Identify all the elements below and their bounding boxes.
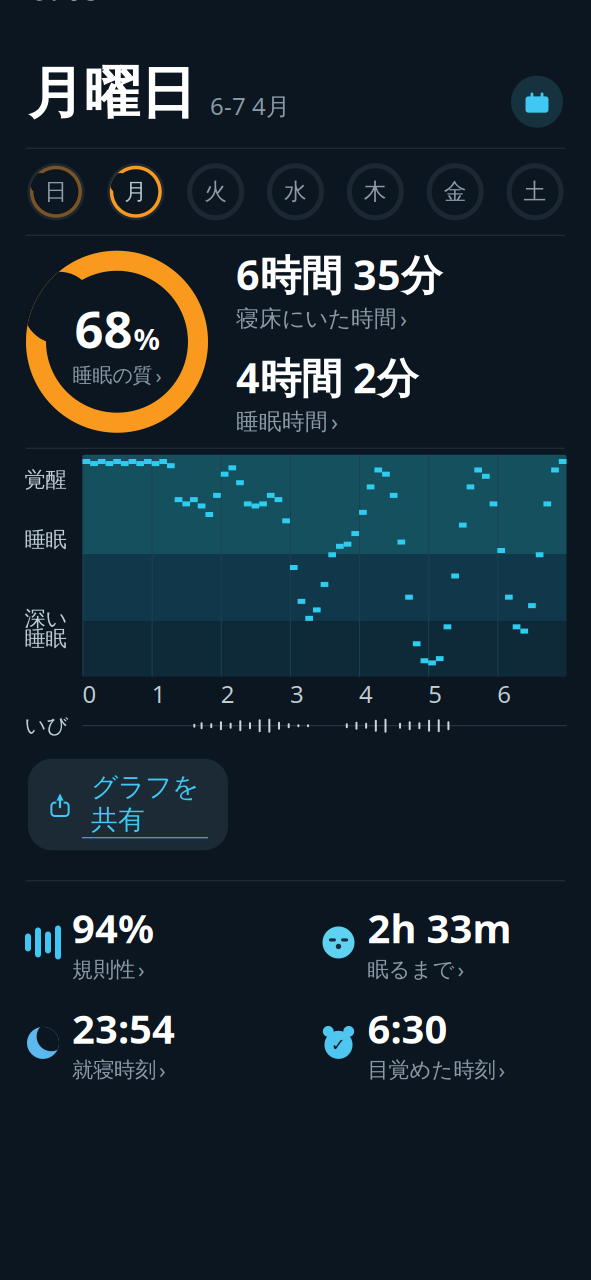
staticText: ›	[155, 362, 161, 389]
staticText: 6	[497, 678, 511, 710]
button[interactable]: 水	[256, 161, 335, 223]
button[interactable]: 23:54	[0, 1002, 295, 1084]
button[interactable]: 金	[415, 161, 495, 223]
staticText: 3	[290, 678, 304, 710]
button[interactable]: 94%	[0, 901, 295, 984]
button[interactable]: 日	[16, 161, 96, 223]
staticText: 1	[152, 678, 166, 710]
staticText: ›	[498, 1056, 505, 1084]
staticText: ›	[400, 304, 407, 334]
staticText: 木	[364, 178, 387, 206]
staticText: 4時間 2分	[236, 350, 418, 405]
staticText: 就寝時刻	[72, 1057, 156, 1083]
staticText: 火	[204, 178, 227, 206]
staticText: ›	[159, 1056, 166, 1084]
staticText: 月曜日	[28, 59, 196, 128]
button[interactable]: ▲	[28, 759, 228, 850]
staticText: 0	[82, 678, 96, 710]
button[interactable]: 68	[22, 247, 212, 437]
staticText: 2h 33m	[367, 901, 511, 954]
staticText: 規則性	[72, 956, 135, 983]
button[interactable]: ✓	[295, 1002, 591, 1084]
button[interactable]: 木	[335, 161, 415, 223]
staticText: 6-7 4月	[210, 90, 290, 122]
button[interactable]: カレンダー	[511, 76, 563, 128]
staticText: 4	[359, 678, 373, 710]
staticText: 睡眠	[24, 626, 66, 652]
staticText: 眠るまで	[367, 956, 454, 983]
staticText: ›	[138, 955, 145, 984]
staticText: 目覚めた時刻	[367, 1057, 495, 1083]
staticText: グラフを共有	[91, 771, 199, 836]
staticText: 5	[428, 678, 442, 710]
button[interactable]: 火	[176, 161, 256, 223]
button[interactable]: 6時間 35分	[236, 247, 442, 334]
staticText: 金	[444, 178, 467, 206]
button[interactable]: 4時間 2分	[236, 350, 418, 437]
staticText: 2	[221, 678, 235, 710]
staticText: 寝床にいた時間	[236, 305, 397, 333]
staticText: 月	[124, 178, 147, 206]
staticText: ›	[457, 955, 464, 984]
staticText: ›	[331, 407, 338, 437]
staticText: 6:30	[367, 1002, 447, 1055]
staticText: 睡眠の質	[72, 363, 152, 388]
button[interactable]: 2h 33m	[295, 901, 591, 984]
staticText: 6:48	[28, 0, 101, 11]
staticText: 68	[74, 295, 132, 362]
staticText: ✓	[331, 1035, 346, 1055]
staticText: %	[133, 319, 159, 358]
staticText: 日	[44, 178, 67, 206]
staticText: いび	[24, 713, 68, 739]
staticText: 水	[284, 178, 307, 206]
staticText: 23:54	[72, 1002, 175, 1055]
staticText: ▲	[56, 791, 63, 802]
staticText: 睡眠時間	[236, 408, 328, 436]
button[interactable]: 土	[495, 161, 575, 223]
staticText: 94%	[72, 901, 154, 954]
button[interactable]: 月	[96, 161, 176, 223]
staticText: 睡眠	[24, 527, 66, 553]
staticText: 土	[524, 178, 547, 206]
staticText: 覚醒	[24, 467, 66, 493]
staticText: 深い	[24, 606, 67, 632]
staticText: 6時間 35分	[236, 247, 442, 302]
